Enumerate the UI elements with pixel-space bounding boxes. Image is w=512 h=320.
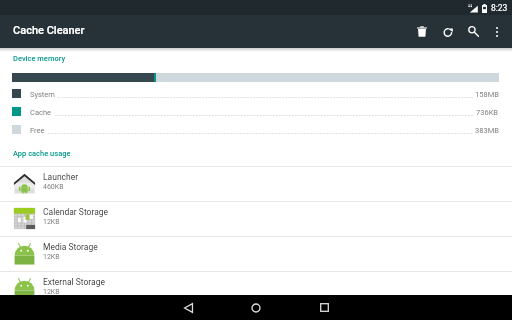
staticText: Device memory [13,54,66,63]
button[interactable]: More options [485,15,509,48]
button[interactable]: External Storage [0,272,512,307]
staticText: 460KB [43,183,64,191]
button[interactable]: Media Storage [0,237,512,272]
button[interactable]: Calendar Storage [0,202,512,237]
button[interactable]: Delete [409,15,435,48]
staticText: 12KB [43,218,60,226]
staticText: Launcher [43,172,79,182]
staticText: App cache usage [13,149,71,158]
staticText: 158MB [475,90,499,99]
button[interactable]: Home [222,295,290,320]
staticText: Free [30,126,45,135]
staticText: Cache Cleaner [13,24,85,37]
staticText: 12KB [43,288,60,296]
staticText: 12KB [43,253,60,261]
staticText: Calendar Storage [43,207,109,217]
button[interactable]: Search [461,15,485,48]
staticText: External Storage [43,277,105,287]
staticText: 383MB [475,126,499,135]
staticText: System [30,90,55,99]
staticText: Media Storage [43,242,98,252]
staticText: Cache [30,108,51,117]
staticText: 736KB [476,108,499,117]
button[interactable]: Launcher [0,167,512,202]
button[interactable]: Recents [290,295,358,320]
button[interactable]: Refresh [435,15,461,48]
staticText: 8:23 [491,3,508,13]
button[interactable]: Back [154,295,222,320]
